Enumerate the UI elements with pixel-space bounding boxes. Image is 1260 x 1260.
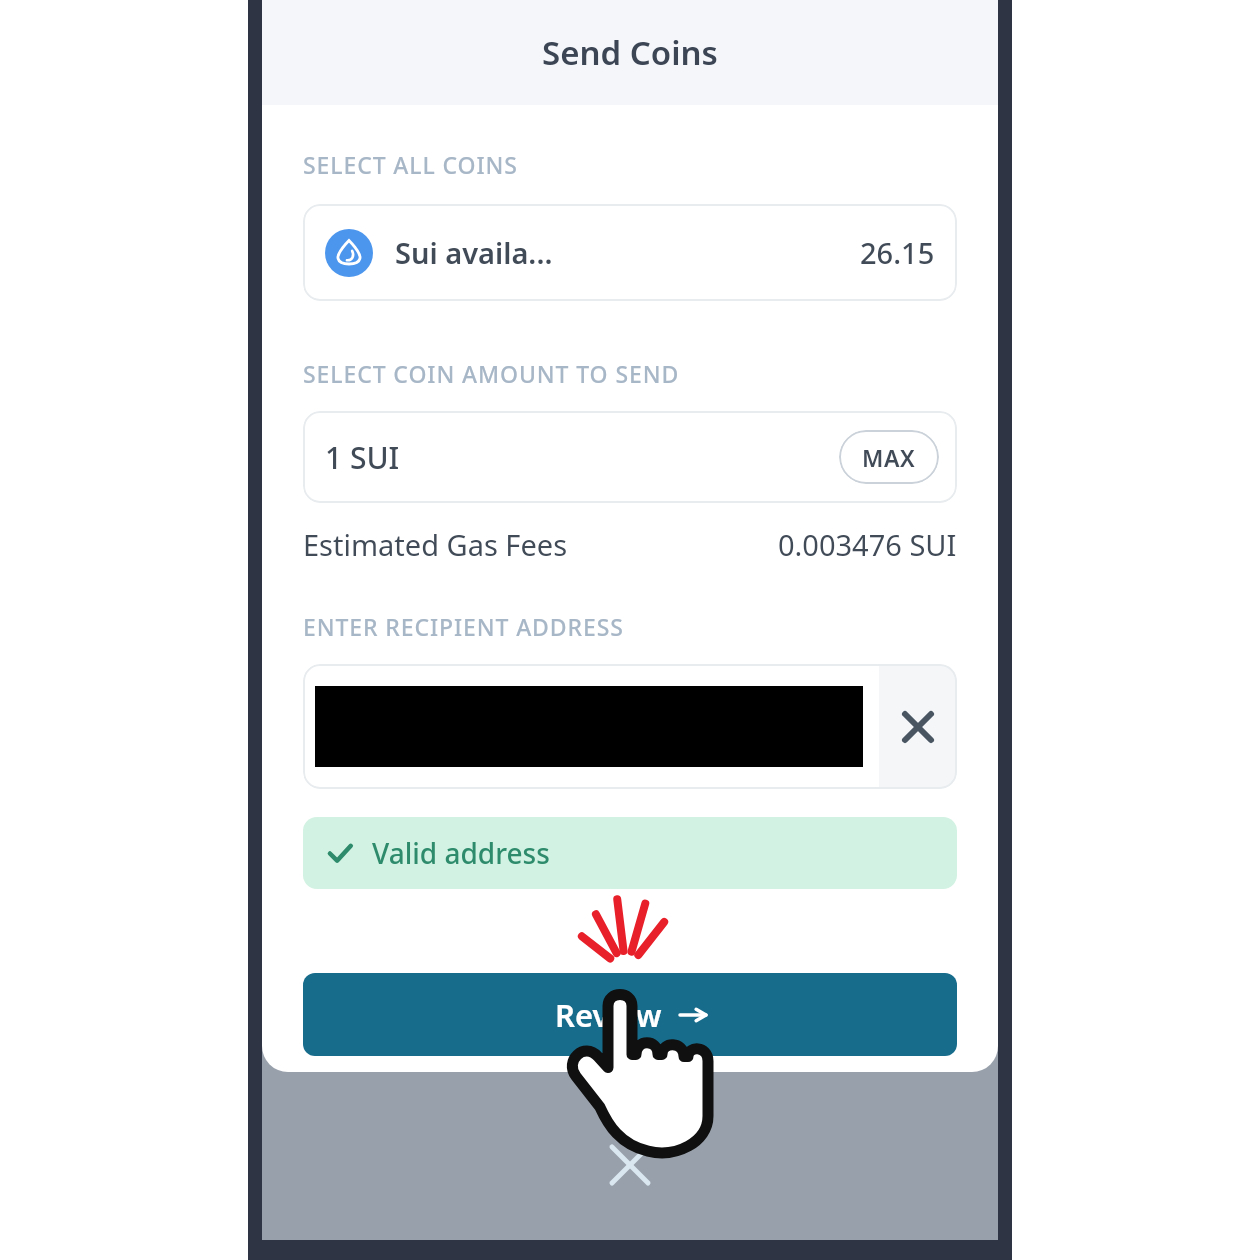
staticText: MAX bbox=[862, 442, 916, 473]
button[interactable]: Sui availa... bbox=[303, 204, 957, 301]
button[interactable]: 1 SUI bbox=[303, 411, 957, 503]
staticText: Estimated Gas Fees bbox=[303, 525, 568, 564]
button[interactable]: Clear address bbox=[879, 666, 957, 787]
staticText: SELECT COIN AMOUNT TO SEND bbox=[303, 358, 680, 389]
staticText: Valid address bbox=[372, 834, 550, 872]
button[interactable]: Close bbox=[598, 1133, 662, 1197]
staticText: 0.003476 SUI bbox=[778, 525, 957, 564]
staticText: Review bbox=[555, 994, 662, 1036]
staticText: 1 SUI bbox=[325, 437, 400, 478]
staticText: Sui availa... bbox=[395, 233, 553, 272]
staticText: 26.15 bbox=[860, 233, 935, 272]
staticText: SELECT ALL COINS bbox=[303, 149, 518, 180]
staticText: Send Coins bbox=[542, 30, 718, 75]
button[interactable]: Review bbox=[303, 973, 957, 1056]
staticText: ENTER RECIPIENT ADDRESS bbox=[303, 611, 624, 642]
button[interactable]: MAX bbox=[839, 430, 939, 484]
